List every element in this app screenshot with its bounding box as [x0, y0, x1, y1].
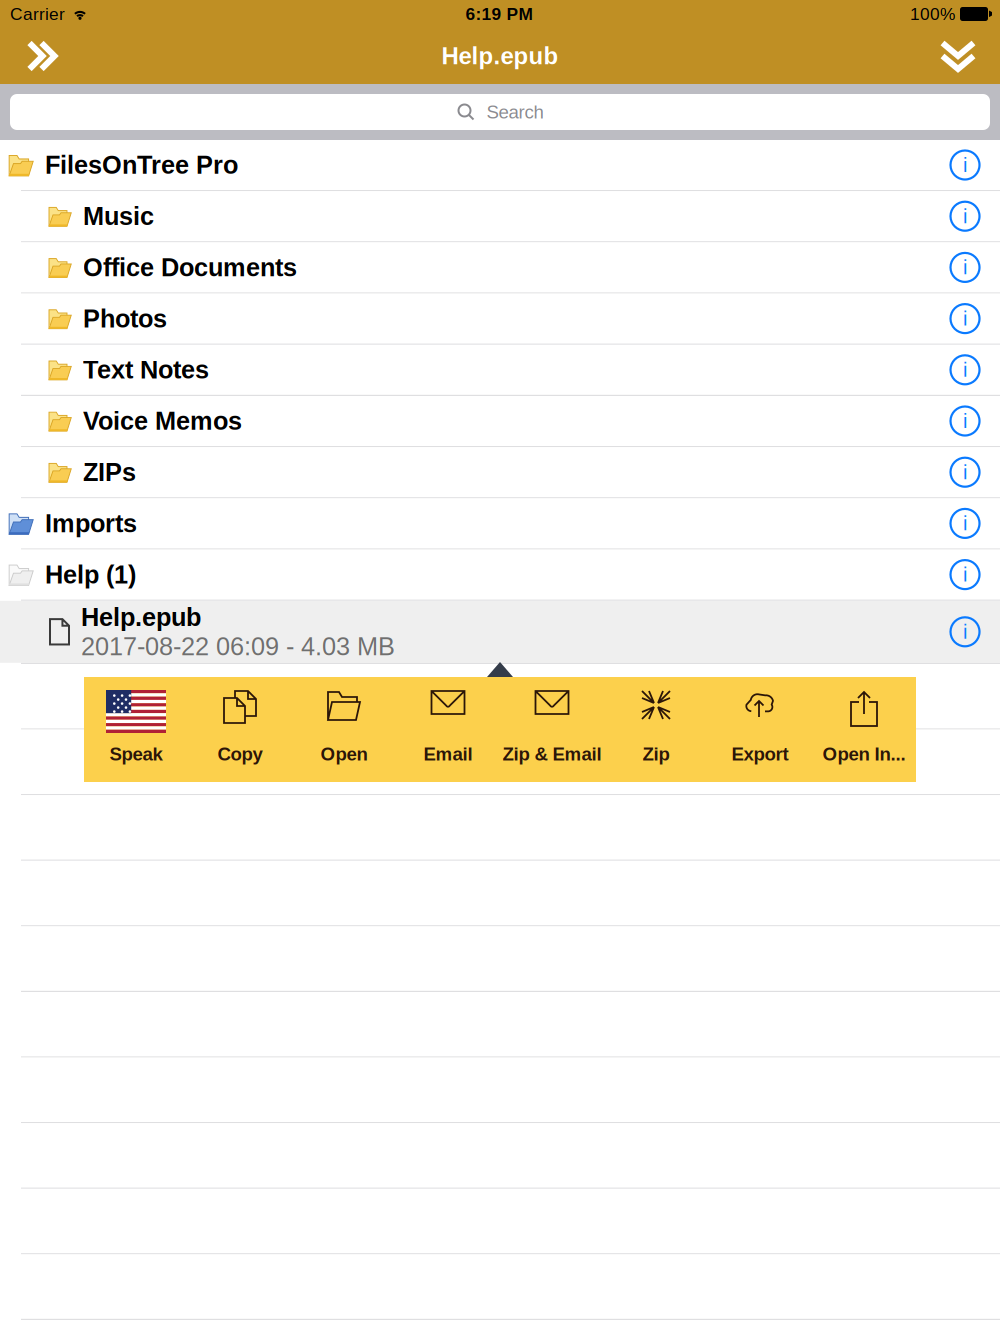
staticText: Email — [423, 744, 472, 764]
button[interactable]: More info — [930, 294, 1000, 344]
button[interactable]: Imports — [0, 498, 1000, 548]
staticText: FilesOnTree Pro — [45, 151, 238, 179]
staticText: i — [963, 307, 967, 330]
staticText: Office Documents — [83, 253, 297, 281]
button[interactable]: Music — [0, 191, 1000, 241]
staticText: Voice Memos — [83, 407, 242, 435]
button[interactable] — [812, 677, 916, 782]
button[interactable]: More info — [930, 242, 1000, 292]
button[interactable]: Photos — [0, 294, 1000, 344]
button[interactable]: Voice Memos — [0, 396, 1000, 446]
button[interactable]: Collapse tree — [916, 28, 1000, 84]
button[interactable] — [396, 677, 500, 782]
staticText: i — [963, 256, 967, 278]
staticText: Export — [731, 744, 788, 764]
staticText: Copy — [217, 744, 262, 764]
staticText: Zip & Email — [502, 744, 601, 764]
button[interactable]: Office Documents — [0, 242, 1000, 292]
staticText: Help.epub — [81, 603, 201, 631]
staticText: i — [963, 410, 967, 432]
staticText: 2017-08-22 06:09 - 4.03 MB — [81, 632, 395, 661]
button[interactable] — [292, 677, 396, 782]
button[interactable] — [188, 677, 292, 782]
button[interactable] — [708, 677, 812, 782]
button[interactable]: Text Notes — [0, 345, 1000, 395]
staticText: i — [963, 621, 967, 643]
staticText: i — [963, 205, 967, 227]
button[interactable]: More info — [930, 396, 1000, 446]
staticText: i — [963, 359, 967, 381]
staticText: Imports — [45, 509, 137, 537]
button[interactable]: FilesOnTree Pro — [0, 140, 1000, 190]
button[interactable] — [500, 677, 604, 782]
staticText: i — [963, 563, 967, 586]
staticText: Carrier — [10, 4, 65, 24]
staticText: Help (1) — [45, 560, 136, 589]
button[interactable]: More info — [930, 550, 1000, 600]
button[interactable] — [84, 677, 188, 782]
staticText: Search — [486, 102, 543, 122]
staticText: i — [963, 154, 967, 176]
button[interactable]: More info — [930, 447, 1000, 497]
button[interactable]: More info — [930, 498, 1000, 548]
staticText: 100% — [910, 4, 955, 24]
button[interactable]: Expand tree — [0, 28, 84, 84]
button[interactable]: More info — [930, 140, 1000, 190]
staticText: i — [963, 461, 967, 483]
button[interactable]: More info — [930, 191, 1000, 241]
staticText: Speak — [109, 744, 162, 764]
button[interactable]: ZIPs — [0, 447, 1000, 497]
staticText: Text Notes — [83, 356, 209, 384]
staticText: Help.epub — [441, 43, 558, 69]
button[interactable]: Help.epub — [0, 601, 1000, 663]
staticText: ZIPs — [83, 458, 136, 486]
button[interactable]: More info — [930, 345, 1000, 395]
button[interactable] — [604, 677, 708, 782]
button[interactable]: More info — [930, 607, 1000, 657]
staticText: Open — [320, 744, 367, 764]
staticText: i — [963, 512, 967, 534]
staticText: 6:19 PM — [465, 4, 532, 24]
staticText: Open In... — [822, 744, 905, 764]
button[interactable]: Help (1) — [0, 550, 1000, 600]
staticText: Photos — [83, 304, 167, 333]
staticText: Zip — [642, 744, 669, 764]
staticText: Music — [83, 202, 154, 230]
